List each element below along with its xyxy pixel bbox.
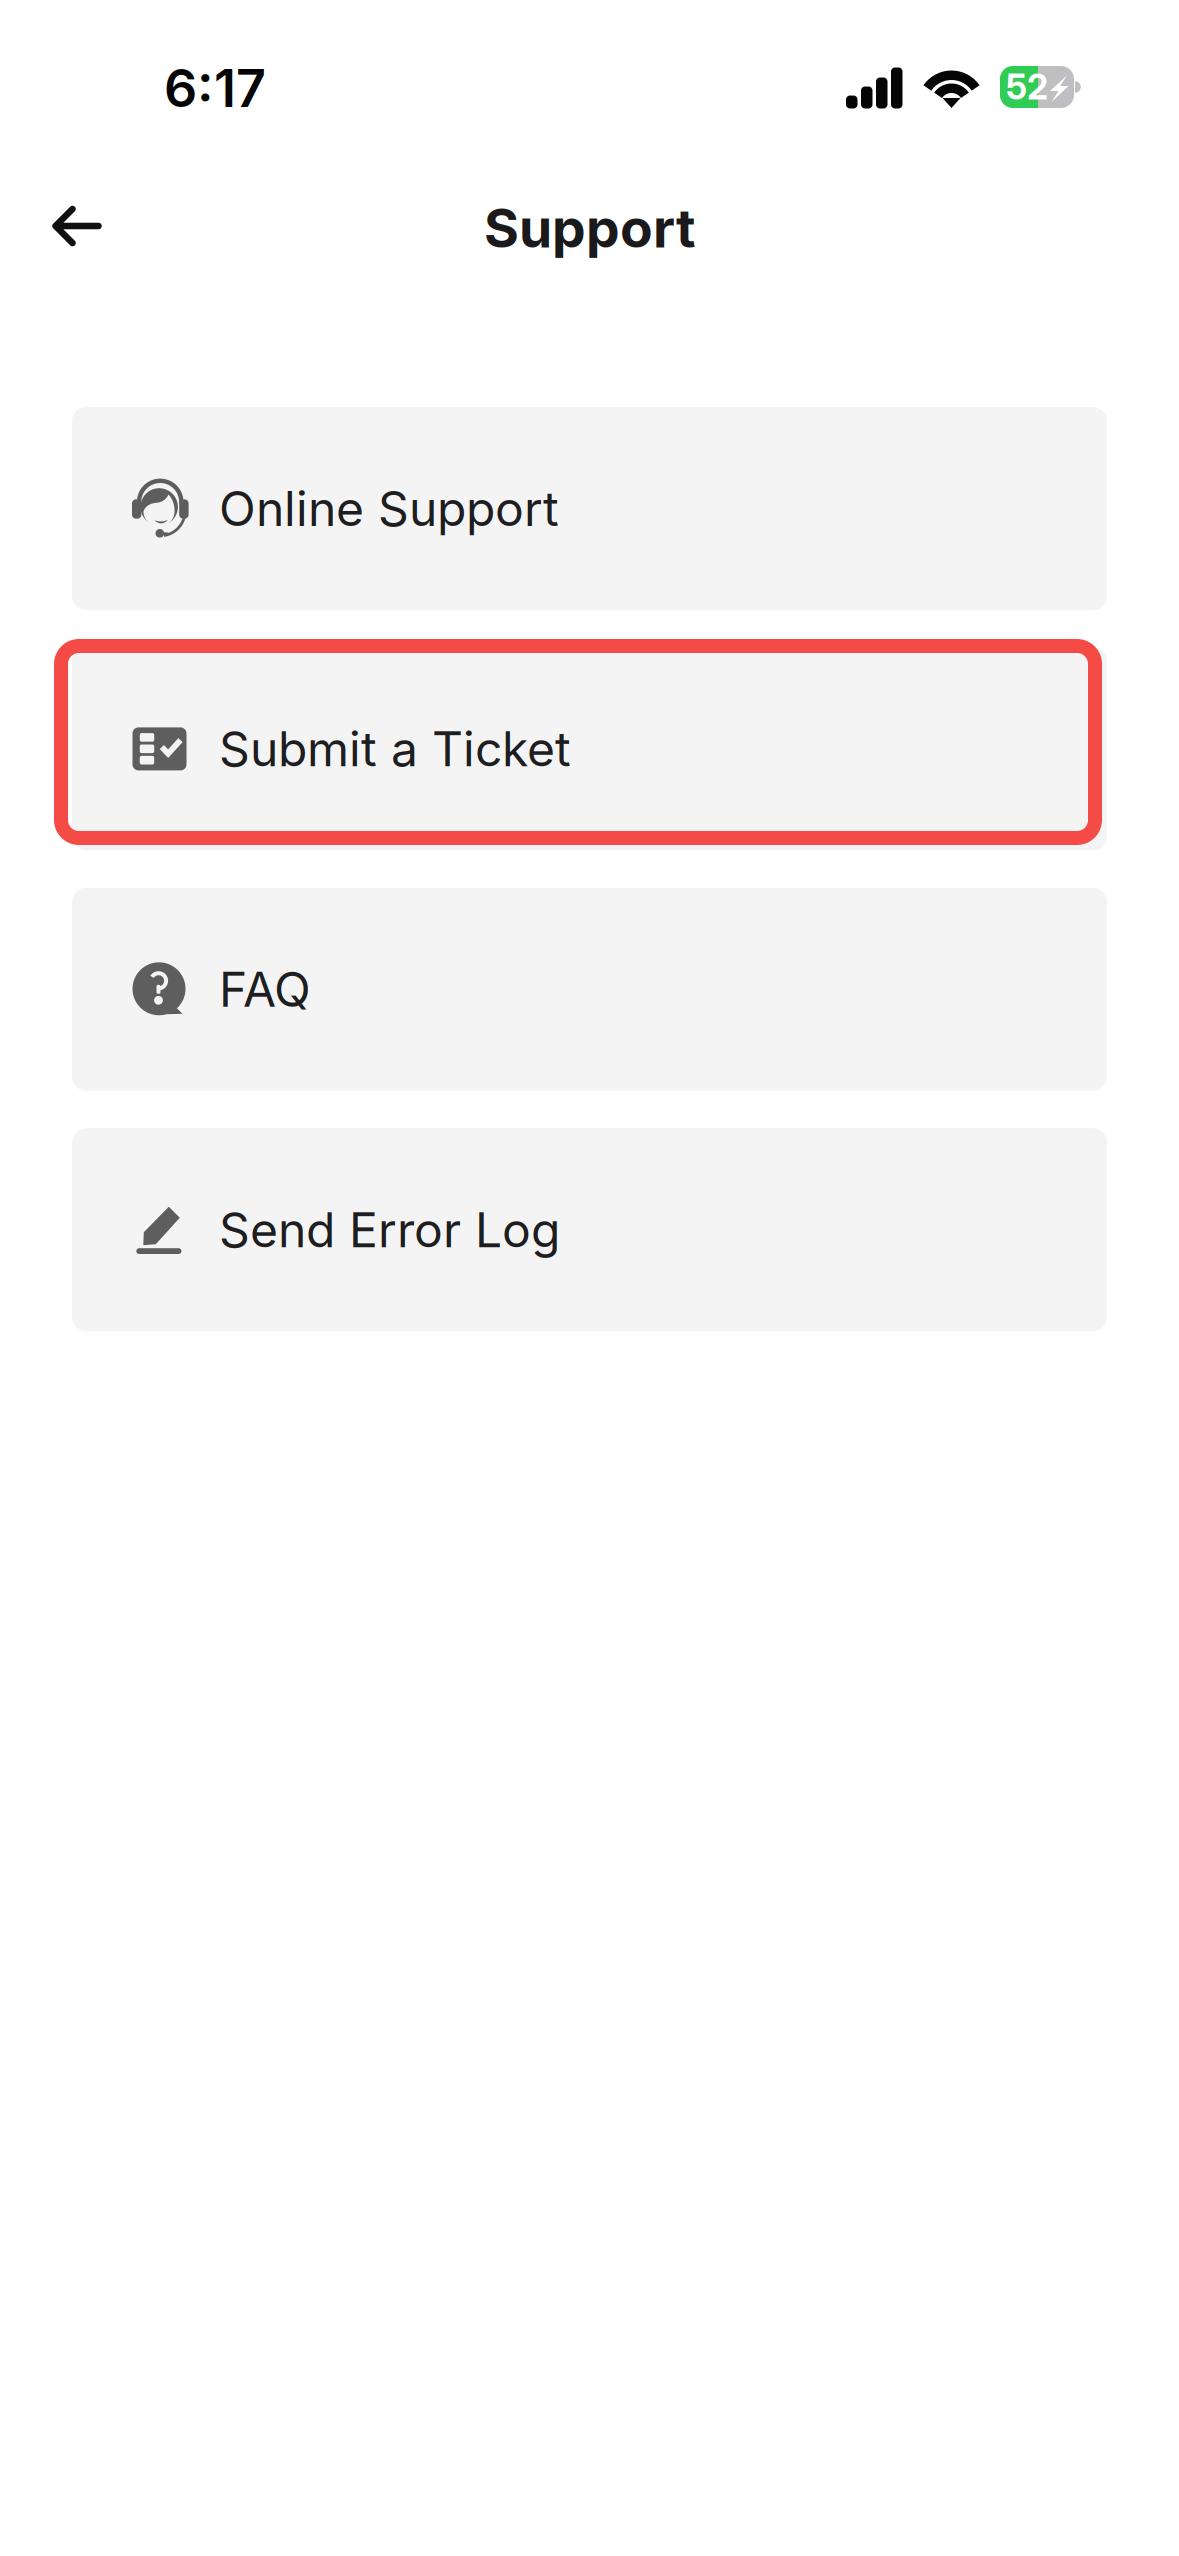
staticText: 6:17 <box>164 56 266 119</box>
staticText: Send Error Log <box>219 1201 560 1259</box>
staticText: Support <box>484 196 696 260</box>
button[interactable]: Send Error Log <box>72 1128 1107 1331</box>
button[interactable]: Online Support <box>72 407 1107 610</box>
button[interactable]: FAQ <box>72 888 1107 1091</box>
staticText: FAQ <box>219 960 311 1018</box>
staticText: 52 <box>1006 66 1048 108</box>
staticText: Submit a Ticket <box>219 720 571 778</box>
staticText: Online Support <box>219 479 559 538</box>
button[interactable]: Submit a Ticket <box>72 647 1107 850</box>
button[interactable]: Back <box>27 176 127 276</box>
